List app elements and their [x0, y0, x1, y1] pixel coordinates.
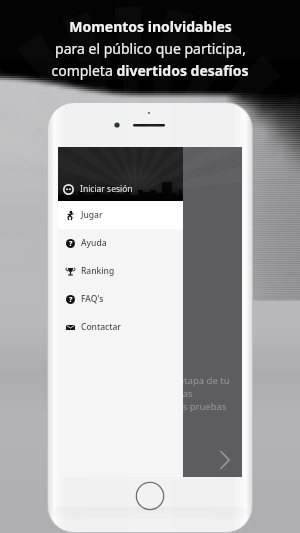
- staticText: Contactar: [81, 321, 121, 333]
- staticText: Iniciar sesión: [80, 183, 133, 195]
- button[interactable]: Iniciar sesión: [58, 147, 183, 201]
- staticText: completa divertidos desafíos: [51, 61, 249, 80]
- button[interactable]: ?: [58, 229, 183, 257]
- button[interactable]: ?: [58, 285, 183, 313]
- staticText: para el público que participa,: [55, 39, 246, 58]
- staticText: Momentos inolvidables: [69, 17, 232, 36]
- staticText: FAQ's: [81, 293, 104, 305]
- staticText: Ranking: [81, 265, 115, 277]
- staticText: Ayuda: [81, 237, 107, 249]
- staticText: Jugar: [81, 209, 103, 221]
- staticText: arias: [171, 387, 193, 400]
- staticText: ?: [69, 239, 73, 248]
- staticText: a etapa de tu: [171, 374, 230, 387]
- button[interactable]: Contactar: [58, 313, 183, 341]
- other: Next: [219, 451, 230, 469]
- staticText: rias pruebas: [171, 400, 227, 413]
- button[interactable]: Ranking: [58, 257, 183, 285]
- button[interactable]: Jugar: [58, 201, 183, 229]
- staticText: ?: [69, 295, 73, 304]
- button[interactable]: Iniciar sesión: [63, 183, 133, 195]
